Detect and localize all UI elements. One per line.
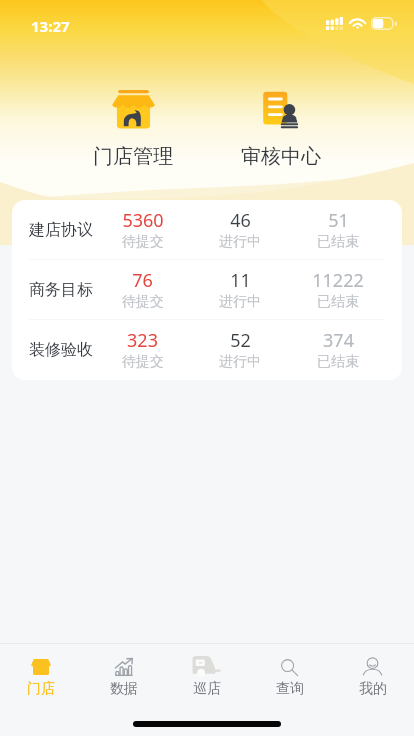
staticText: 已结束 bbox=[317, 353, 359, 370]
staticText: 巡店 bbox=[193, 680, 221, 698]
staticText: 11222 bbox=[312, 268, 364, 293]
staticText: 门店管理 bbox=[93, 144, 173, 169]
staticText: 数据 bbox=[110, 680, 138, 698]
staticText: 323 bbox=[127, 328, 158, 353]
button[interactable]: 审核中心 bbox=[228, 86, 334, 173]
staticText: 52 bbox=[230, 328, 251, 353]
staticText: 51 bbox=[328, 208, 349, 233]
button[interactable]: 商务目标 bbox=[12, 260, 402, 319]
button[interactable]: 建店协议 bbox=[12, 200, 402, 259]
button[interactable]: 装修验收 bbox=[12, 320, 402, 379]
staticText: 审核中心 bbox=[241, 144, 321, 169]
staticText: 5360 bbox=[122, 208, 164, 233]
staticText: 建店协议 bbox=[29, 220, 94, 240]
staticText: 11 bbox=[230, 268, 251, 293]
staticText: 待提交 bbox=[122, 353, 164, 370]
staticText: 门店 bbox=[27, 680, 55, 698]
staticText: 76 bbox=[132, 268, 153, 293]
staticText: 已结束 bbox=[317, 233, 359, 250]
button[interactable]: 门店 bbox=[0, 644, 82, 698]
staticText: 进行中 bbox=[219, 353, 261, 370]
staticText: 待提交 bbox=[122, 233, 164, 250]
staticText: 我的 bbox=[359, 680, 387, 698]
staticText: 进行中 bbox=[219, 233, 261, 250]
staticText: 进行中 bbox=[219, 293, 261, 310]
staticText: 装修验收 bbox=[29, 340, 94, 360]
staticText: 待提交 bbox=[122, 293, 164, 310]
button[interactable]: 查询 bbox=[248, 644, 331, 698]
staticText: 374 bbox=[323, 328, 354, 353]
button[interactable]: 巡店 bbox=[165, 644, 248, 698]
button[interactable]: 数据 bbox=[82, 644, 165, 698]
button[interactable]: 门店管理 bbox=[80, 86, 186, 173]
staticText: 13:27 bbox=[31, 16, 70, 36]
staticText: 商务目标 bbox=[29, 280, 94, 300]
staticText: 已结束 bbox=[317, 293, 359, 310]
staticText: 查询 bbox=[276, 680, 304, 698]
button[interactable]: 我的 bbox=[331, 644, 414, 698]
staticText: 46 bbox=[230, 208, 251, 233]
